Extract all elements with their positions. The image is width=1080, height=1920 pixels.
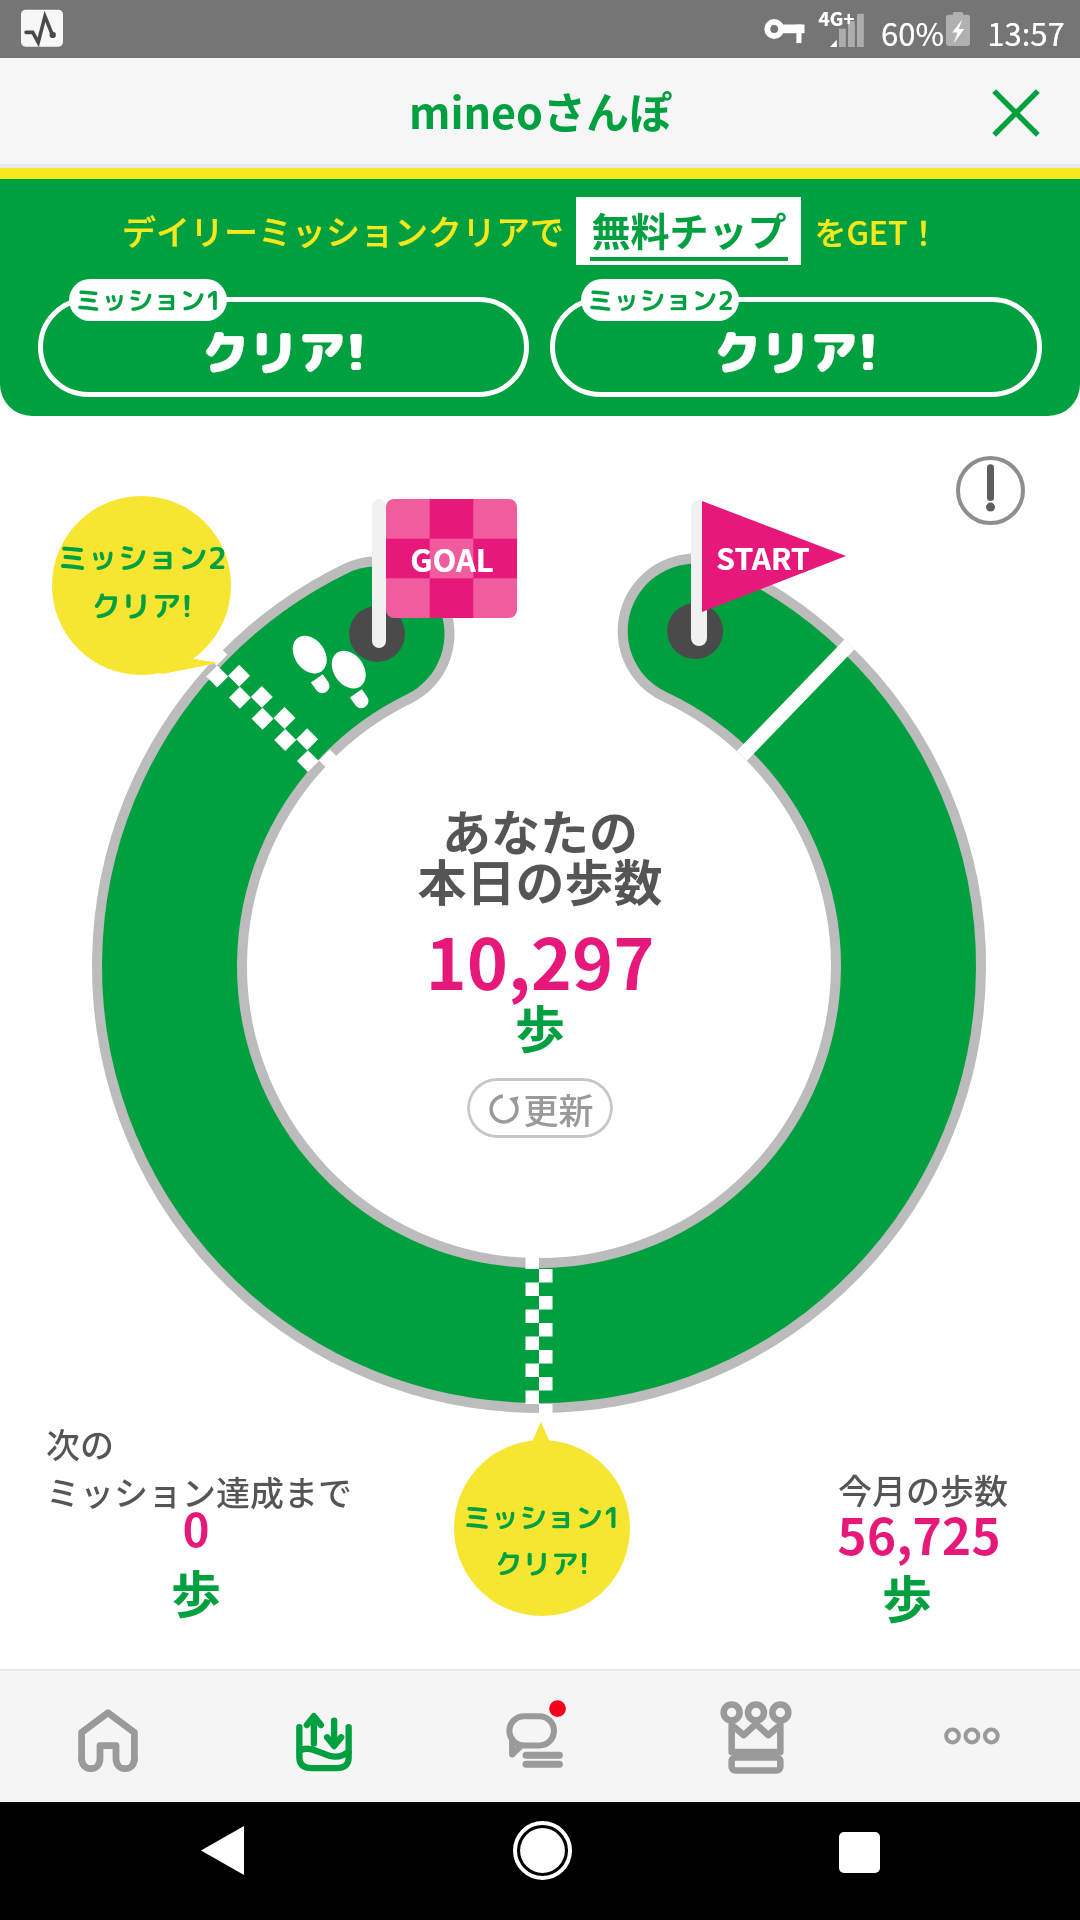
button[interactable]: Recents — [835, 1828, 883, 1876]
button[interactable]: 無料チップ — [576, 197, 801, 265]
button[interactable]: Data usage — [216, 1669, 432, 1802]
staticText: ミッション2 クリア! — [57, 537, 227, 627]
button[interactable]: クリア! — [38, 297, 529, 397]
staticText: 歩 — [171, 1555, 221, 1627]
staticText: 10,297 — [425, 909, 655, 1010]
staticText: ミッション1 — [75, 282, 222, 318]
staticText: START — [716, 535, 810, 578]
button[interactable]: More — [864, 1669, 1080, 1802]
button[interactable]: クリア! — [550, 297, 1042, 397]
button[interactable]: Messages — [432, 1669, 648, 1802]
staticText: mineoさんぽ — [409, 79, 672, 141]
button[interactable]: Home — [0, 1669, 216, 1802]
staticText: 更新 — [523, 1083, 594, 1134]
button[interactable]: Rewards — [648, 1669, 864, 1802]
button[interactable]: Home — [512, 1820, 572, 1880]
staticText: 次の ミッション達成まで — [46, 1419, 352, 1516]
staticText: クリア! — [713, 318, 879, 385]
staticText: 60% — [881, 10, 944, 55]
staticText: 今月の歩数 — [838, 1465, 1008, 1514]
staticText: 13:57 — [987, 10, 1065, 55]
button[interactable]: Back — [196, 1824, 248, 1876]
button[interactable]: Information — [944, 444, 1036, 536]
staticText: をGET！ — [814, 208, 940, 254]
staticText: 無料チップ — [590, 201, 788, 257]
staticText: ミッション2 — [587, 282, 734, 318]
staticText: デイリーミッションクリアで — [122, 206, 564, 255]
staticText: あなたの 本日の歩数 — [417, 794, 663, 915]
staticText: GOAL — [410, 536, 494, 581]
staticText: クリア! — [201, 318, 367, 385]
staticText: 歩 — [882, 1560, 932, 1632]
staticText: 歩 — [515, 990, 565, 1062]
staticText: 4G+ — [818, 4, 855, 32]
staticText: ミッション1 クリア! — [463, 1498, 621, 1583]
button[interactable]: Close — [980, 77, 1052, 149]
staticText: 56,725 — [837, 1497, 1001, 1569]
staticText: 0 — [182, 1494, 210, 1561]
button[interactable]: 更新 — [467, 1078, 613, 1138]
